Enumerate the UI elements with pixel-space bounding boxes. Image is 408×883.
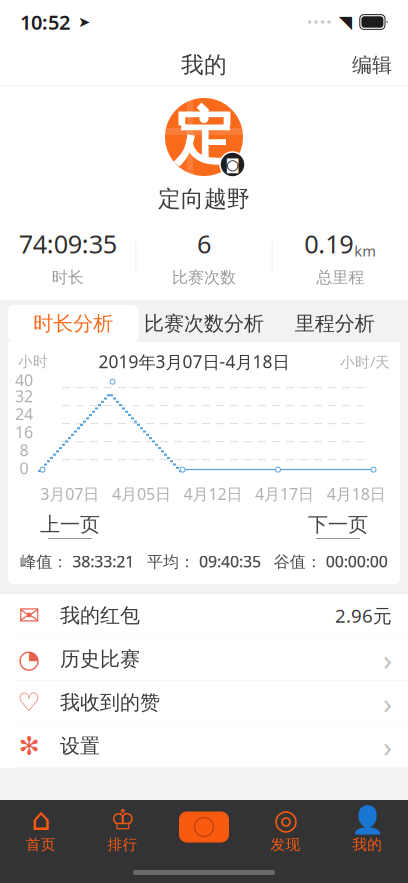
staticText: 8 (19, 439, 28, 461)
staticText: 首页 (26, 835, 56, 853)
staticText: 我的 (181, 51, 227, 79)
button[interactable]: ◔ (0, 637, 408, 681)
staticText: 编辑 (352, 53, 392, 77)
staticText: 定向越野 (158, 185, 250, 213)
staticText: 定 (173, 99, 234, 175)
staticText: 40 (15, 369, 33, 391)
button[interactable]: ⌂ (0, 800, 82, 853)
button[interactable]: 编辑 (336, 45, 408, 85)
staticText: 16 (15, 421, 33, 443)
staticText: 👤 (351, 804, 384, 835)
staticText: 0.19 (304, 227, 353, 260)
staticText: 我收到的赞 (60, 690, 160, 715)
button[interactable]: 里程分析 (269, 305, 400, 342)
staticText: 发现 (271, 835, 301, 853)
staticText: 32 (15, 385, 33, 407)
staticText: 74:09:35 (19, 227, 117, 260)
staticText: km (354, 241, 376, 260)
staticText: 比赛次数分析 (144, 311, 264, 336)
staticText: 3月07日 (40, 483, 99, 504)
staticText: 里程分析 (295, 311, 375, 336)
staticText: 设置 (60, 734, 100, 758)
staticText: 排行 (107, 835, 137, 853)
staticText: 平均： 09:40:35 (147, 551, 261, 572)
button[interactable]: 开始 (163, 803, 245, 850)
button[interactable]: ♔ (82, 800, 163, 853)
button[interactable]: 更换头像 (161, 96, 247, 178)
staticText: ♡ (17, 688, 40, 717)
staticText: ♔ (110, 804, 135, 835)
staticText: › (383, 639, 392, 678)
staticText: ⌂ (31, 802, 50, 837)
staticText: 4月05日 (112, 483, 171, 504)
staticText: 24 (15, 403, 33, 425)
staticText: ◎ (274, 804, 298, 835)
staticText: 4月17日 (255, 483, 314, 504)
staticText: ◙ (225, 156, 239, 173)
staticText: ✉ (18, 601, 39, 630)
button[interactable]: ✻ (0, 724, 408, 768)
button[interactable]: 时长分析 (8, 305, 139, 342)
staticText: 2019年3月07日-4月18日 (98, 350, 289, 373)
staticText: 时长分析 (33, 311, 113, 336)
staticText: 历史比赛 (60, 647, 140, 671)
staticText: 小时/天 (340, 352, 390, 371)
staticText: ◥ (339, 12, 352, 32)
staticText: 0 (19, 457, 28, 479)
staticText: 我的红包 (60, 603, 140, 628)
staticText: 上一页 (40, 512, 100, 537)
staticText: › (383, 726, 392, 765)
button[interactable]: 👤 (326, 800, 408, 853)
staticText: 下一页 (308, 512, 368, 537)
button[interactable]: 上一页 (22, 508, 118, 543)
button[interactable]: ✉ (0, 594, 408, 637)
staticText: ✻ (18, 732, 39, 760)
staticText: 6 (197, 227, 211, 260)
staticText: ◔ (18, 645, 40, 673)
staticText: ➤ (78, 14, 90, 30)
staticText: 谷值： 00:00:00 (274, 551, 388, 572)
staticText: › (383, 683, 392, 722)
button[interactable]: 比赛次数分析 (139, 305, 269, 342)
button[interactable]: ♡ (0, 681, 408, 724)
staticText: 小时 (18, 353, 48, 371)
staticText: 总里程 (316, 267, 364, 287)
button[interactable]: 下一页 (290, 508, 386, 543)
staticText: 比赛次数 (172, 267, 236, 287)
staticText: 时长 (52, 267, 84, 287)
staticText: 10:52 (20, 9, 70, 35)
staticText: 峰值： 38:33:21 (20, 551, 134, 572)
staticText: 我的 (352, 835, 382, 853)
staticText: 2.96元 (335, 603, 392, 628)
staticText: 4月12日 (183, 483, 242, 504)
button[interactable]: ◎ (245, 800, 326, 853)
staticText: 4月18日 (327, 483, 386, 504)
